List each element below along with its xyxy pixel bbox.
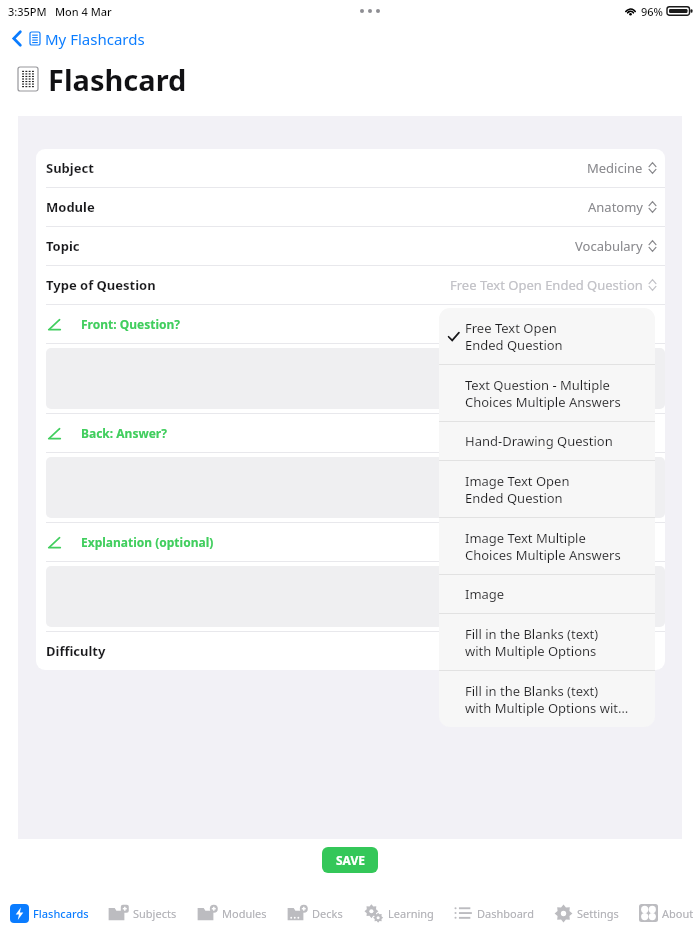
button[interactable]: Learning (363, 896, 434, 930)
staticText: 96% (641, 4, 663, 19)
staticText: Image (465, 585, 505, 603)
staticText: Mon 4 Mar (55, 4, 112, 19)
staticText: Fill in the Blanks (text) with Multiple … (465, 625, 599, 660)
button[interactable]: Topic (36, 227, 665, 265)
staticText: Flashcards (33, 906, 89, 921)
staticText: Image Text Multiple Choices Multiple Ans… (465, 529, 621, 564)
button[interactable]: Settings (554, 896, 619, 930)
other: Edit (46, 316, 63, 333)
button[interactable]: Image Text Multiple Choices Multiple Ans… (439, 518, 655, 574)
staticText: Dashboard (477, 906, 534, 921)
staticText: Settings (577, 906, 619, 921)
button[interactable]: Subject (36, 149, 665, 187)
staticText: My Flashcards (45, 29, 145, 49)
other: Edit (46, 534, 63, 551)
staticText: Front: Question? (81, 316, 181, 332)
button[interactable]: Decks (287, 896, 343, 930)
staticText: Image Text Open Ended Question (465, 472, 570, 507)
staticText: Module (46, 198, 95, 216)
button[interactable]: Back (10, 22, 145, 55)
staticText: 3:35PM (8, 4, 47, 19)
button[interactable]: Difficulty (36, 632, 665, 670)
staticText: Vocabulary (575, 237, 643, 255)
button[interactable]: Edit (36, 305, 665, 343)
staticText: Subject (46, 159, 94, 177)
button[interactable]: Free Text Open Ended Question (439, 308, 655, 364)
button[interactable]: Fill in the Blanks (text) with Multiple … (439, 671, 655, 727)
button[interactable] (46, 457, 665, 518)
button[interactable]: Fill in the Blanks (text) with Multiple … (439, 614, 655, 670)
staticText: Hand-Drawing Question (465, 432, 613, 450)
button[interactable]: Edit (36, 523, 665, 561)
button[interactable]: Text Question - Multiple Choices Multipl… (439, 365, 655, 421)
staticText: About (662, 906, 694, 921)
button[interactable]: Dashboard (454, 896, 534, 930)
button[interactable]: About (639, 896, 694, 930)
staticText: SAVE (336, 852, 365, 868)
button[interactable] (46, 348, 665, 409)
staticText: Decks (312, 906, 343, 921)
staticText: Explanation (optional) (81, 534, 214, 550)
staticText: Modules (222, 906, 267, 921)
button[interactable] (46, 566, 665, 627)
staticText: Back: Answer? (81, 425, 167, 441)
button[interactable]: SAVE (322, 847, 378, 873)
staticText: Free Text Open Ended Question (465, 319, 563, 354)
staticText: Anatomy (588, 198, 643, 216)
button[interactable]: Modules (197, 896, 267, 930)
staticText: Flashcard (48, 60, 187, 99)
button[interactable]: Edit (36, 414, 665, 452)
staticText: Free Text Open Ended Question (450, 276, 643, 294)
staticText: Fill in the Blanks (text) with Multiple … (465, 682, 629, 717)
button[interactable]: Module (36, 188, 665, 226)
other: Back (10, 28, 24, 49)
staticText: Type of Question (46, 276, 156, 294)
button[interactable]: Subjects (108, 896, 177, 930)
button[interactable]: Hand-Drawing Question (439, 422, 655, 460)
button[interactable]: Type of Question (36, 266, 665, 304)
staticText: Learning (388, 906, 434, 921)
other: Edit (46, 425, 63, 442)
staticText: Difficulty (46, 642, 106, 660)
staticText: Topic (46, 237, 80, 255)
button[interactable]: Image (439, 575, 655, 613)
staticText: Medicine (587, 159, 643, 177)
staticText: Text Question - Multiple Choices Multipl… (465, 376, 621, 411)
staticText: Subjects (133, 906, 177, 921)
button[interactable]: Flashcards (10, 896, 89, 930)
button[interactable]: Image Text Open Ended Question (439, 461, 655, 517)
